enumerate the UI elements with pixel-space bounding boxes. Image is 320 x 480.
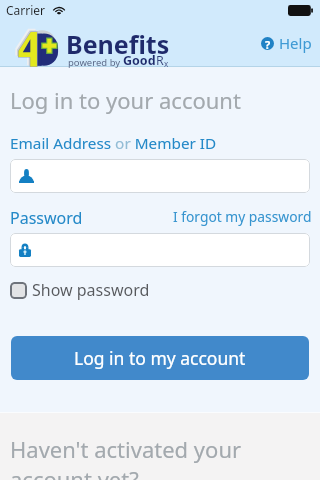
- staticText: ?: [265, 37, 271, 50]
- staticText: Help: [279, 33, 312, 53]
- button[interactable]: Show password: [10, 279, 150, 301]
- button[interactable]: I forgot my password: [173, 207, 312, 226]
- staticText: Email Address or Member ID: [10, 133, 217, 154]
- staticText: Haven't activated your: [10, 434, 242, 464]
- staticText: powered by: [68, 56, 123, 69]
- staticText: Show password: [32, 279, 150, 301]
- staticText: x: [164, 58, 169, 69]
- button[interactable]: Log in to my account: [11, 336, 309, 380]
- staticText: account yet?: [10, 464, 139, 480]
- staticText: Log in to your account: [10, 85, 241, 115]
- staticText: Password: [10, 207, 83, 229]
- button[interactable]: Email Address field: [10, 159, 310, 193]
- staticText: Benefits: [66, 27, 170, 61]
- staticText: Log in to my account: [74, 346, 246, 370]
- other: Battery: [288, 5, 313, 16]
- button[interactable]: Help: [261, 33, 312, 53]
- button[interactable]: Password field: [10, 233, 310, 267]
- staticText: R: [156, 52, 164, 69]
- staticText: Carrier: [6, 2, 46, 18]
- other: Wi-Fi: [52, 5, 66, 15]
- staticText: Good: [123, 52, 156, 69]
